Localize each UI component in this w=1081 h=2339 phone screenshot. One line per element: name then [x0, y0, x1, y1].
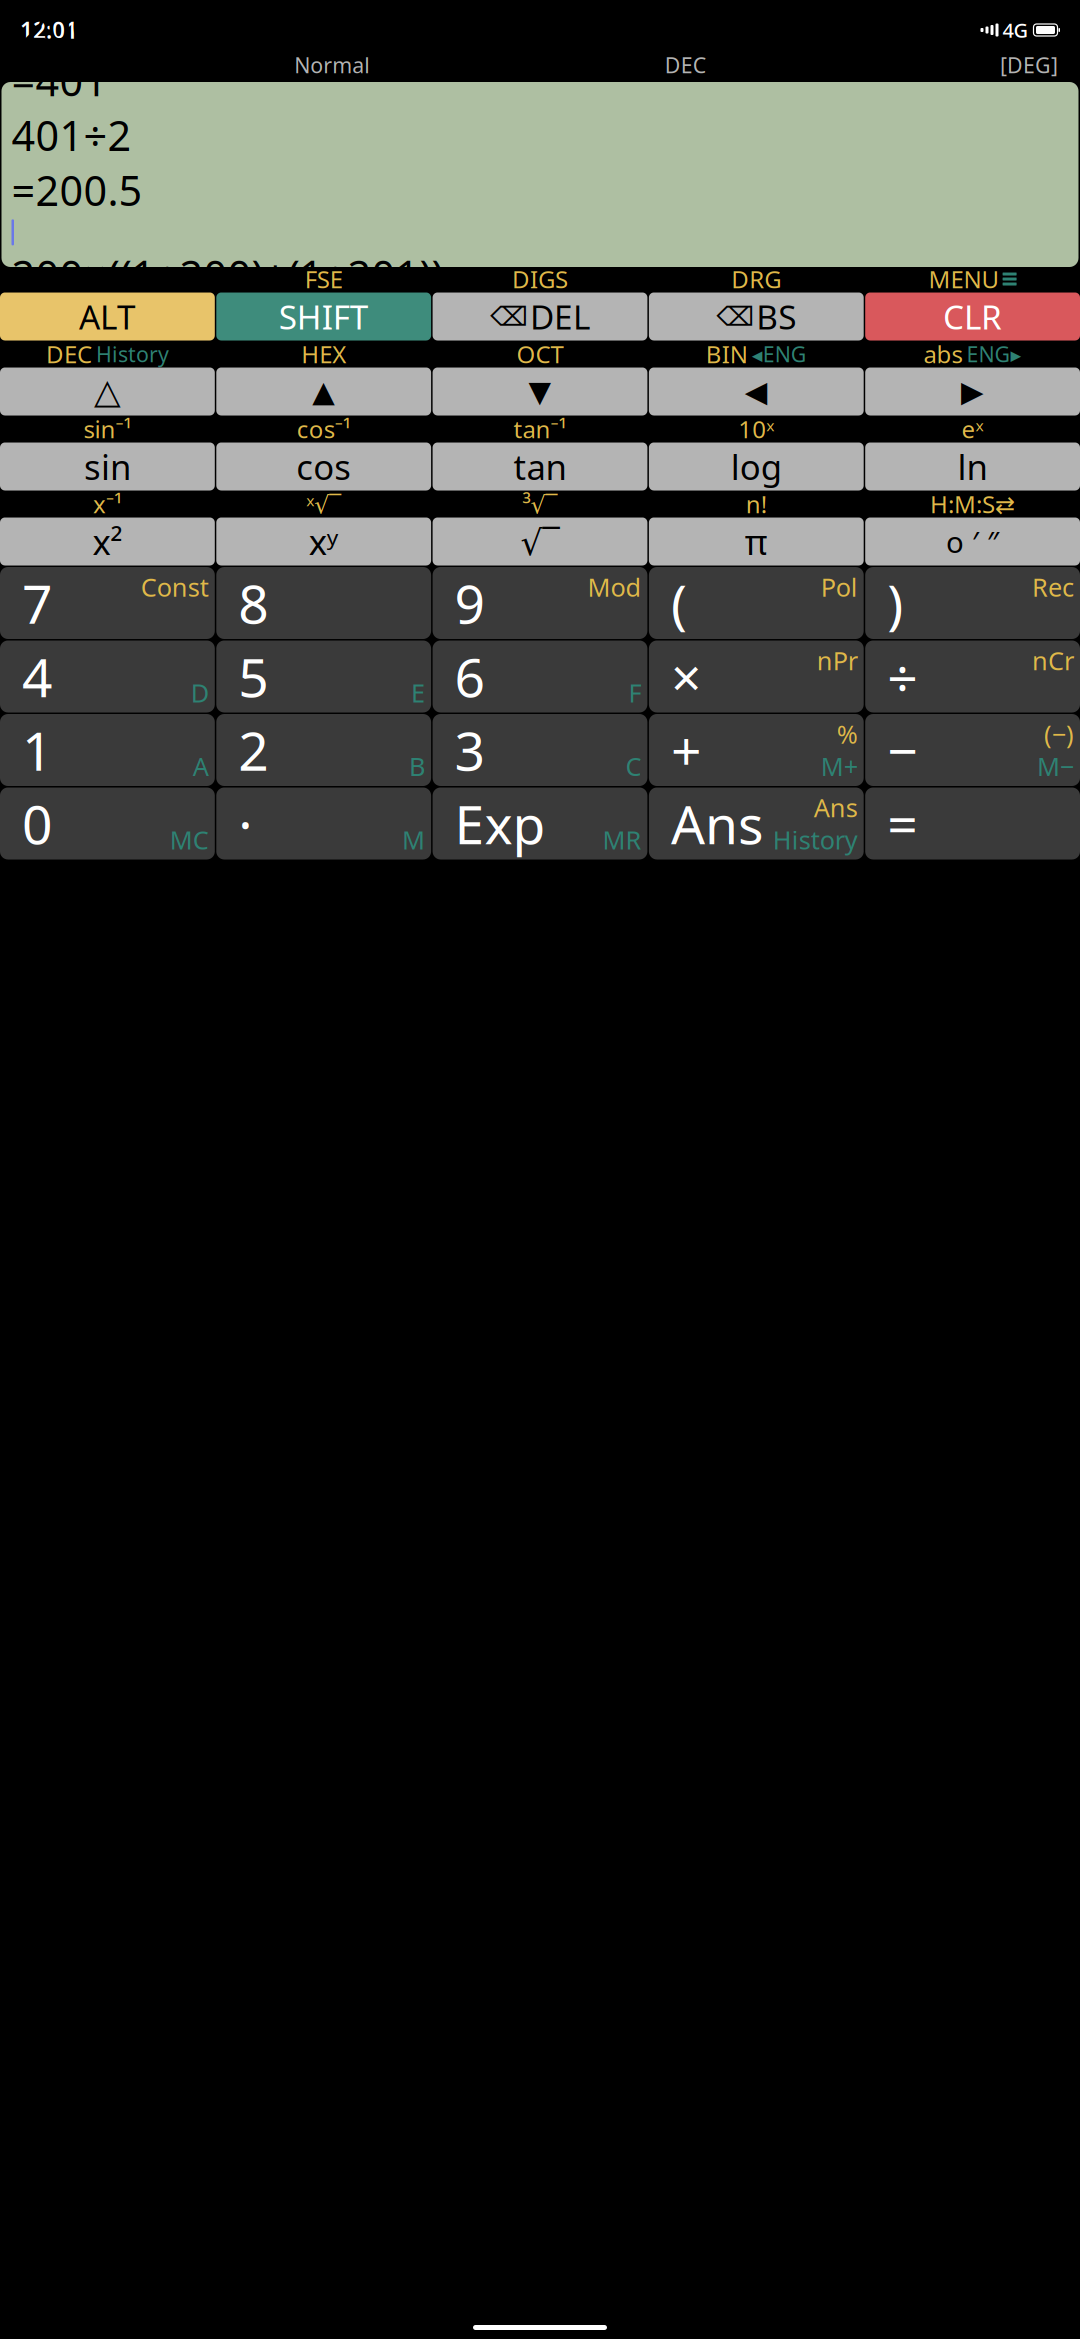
button[interactable]: % [649, 714, 864, 786]
button[interactable] [0, 787, 215, 859]
staticText: 2 [238, 715, 269, 785]
staticText: 4G [1002, 17, 1028, 43]
staticText: × [671, 641, 702, 712]
staticText: nPr [817, 643, 858, 677]
staticText: Normal [294, 51, 370, 79]
button[interactable]: tan [433, 442, 647, 490]
staticText: MENU [929, 263, 1000, 295]
staticText: SHIFT [279, 294, 369, 339]
staticText: n! [746, 488, 767, 520]
staticText: F [628, 676, 641, 709]
staticText: (200+201)÷1 [11, 0, 251, 53]
button[interactable] [0, 640, 215, 712]
staticText: (−) [1044, 717, 1074, 751]
staticText: sin⁻¹ [83, 413, 131, 445]
staticText: =401 [11, 53, 107, 108]
button[interactable]: ⌫ [649, 292, 864, 340]
staticText: =200.5 [11, 162, 142, 217]
staticText: ALT [79, 294, 136, 339]
button[interactable]: (−) [865, 714, 1080, 786]
staticText: MC [170, 823, 209, 856]
staticText: Ans [814, 790, 858, 824]
staticText: 6 [455, 641, 486, 712]
button[interactable]: xʸ [216, 517, 431, 565]
staticText: CLR [943, 294, 1002, 339]
staticText: ( [671, 568, 687, 638]
button[interactable]: Pol [649, 567, 864, 639]
button[interactable]: x² [0, 517, 215, 565]
staticText: BS [756, 294, 796, 339]
button[interactable]: ln [865, 442, 1080, 490]
staticText: 9 [455, 568, 486, 638]
button[interactable]: √‾ [433, 517, 647, 565]
staticText: x⁻¹ [93, 488, 122, 520]
staticText: A [193, 749, 209, 783]
staticText: 10ˣ [738, 413, 774, 445]
staticText: 12:01 [20, 15, 78, 45]
staticText: B [409, 749, 425, 783]
button[interactable]: Ans [649, 787, 864, 859]
staticText: △ [94, 372, 121, 411]
button[interactable] [433, 640, 647, 712]
button[interactable] [433, 714, 647, 786]
button[interactable]: ▶ [865, 367, 1080, 415]
staticText: Rec [1032, 570, 1074, 604]
staticText: DIGS [512, 263, 568, 295]
button[interactable] [216, 640, 431, 712]
button[interactable]: Mod [433, 567, 647, 639]
staticText: √‾ [520, 518, 559, 564]
button[interactable] [216, 787, 431, 859]
button[interactable]: nPr [649, 640, 864, 712]
button[interactable]: nCr [865, 640, 1080, 712]
button[interactable] [216, 567, 431, 639]
staticText: tan⁻¹ [513, 413, 566, 445]
button[interactable] [216, 714, 431, 786]
button[interactable]: CLR [865, 292, 1080, 340]
staticText: nCr [1032, 643, 1074, 677]
staticText: History [96, 340, 169, 368]
button[interactable]: sin [0, 442, 215, 490]
staticText: M [402, 823, 425, 856]
staticText: HEX [301, 338, 346, 370]
staticText: 401÷2 [11, 108, 131, 162]
staticText: [DEG] [1000, 51, 1058, 79]
button[interactable]: ◀ [649, 367, 864, 415]
staticText: 7 [22, 568, 53, 638]
button[interactable] [865, 787, 1080, 859]
button[interactable]: π [649, 517, 864, 565]
staticText: D [191, 676, 209, 709]
button[interactable] [433, 787, 647, 859]
staticText: DEC [46, 338, 92, 370]
button[interactable]: Rec [865, 567, 1080, 639]
button[interactable]: ALT [0, 292, 215, 340]
staticText: ENG▸ [967, 340, 1022, 368]
staticText: 3 [455, 715, 486, 785]
staticText: M− [1037, 749, 1074, 783]
staticText: DEL [530, 294, 590, 339]
button[interactable] [0, 714, 215, 786]
button[interactable]: ▼ [433, 367, 647, 415]
staticText: % [837, 717, 858, 751]
button[interactable]: log [649, 442, 864, 490]
staticText: 5 [238, 641, 269, 712]
staticText: 200×((1÷200)+(1÷201)) [11, 247, 443, 302]
button[interactable]: o ′ ″ [865, 517, 1080, 565]
staticText: BIN [706, 338, 748, 370]
button[interactable]: △ [0, 367, 215, 415]
staticText: = [887, 788, 918, 859]
staticText: tan [513, 443, 566, 489]
button[interactable]: ⌫ [433, 292, 647, 340]
button[interactable]: SHIFT [216, 292, 431, 340]
staticText: 8 [238, 568, 269, 638]
staticText: o ′ ″ [946, 522, 999, 561]
staticText: − [887, 715, 918, 785]
button[interactable]: cos [216, 442, 431, 490]
staticText: ÷ [887, 641, 918, 712]
staticText: · [238, 788, 252, 859]
button[interactable]: ▲ [216, 367, 431, 415]
button[interactable]: Const [0, 567, 215, 639]
staticText: cos⁻¹ [297, 413, 351, 445]
staticText: ) [887, 568, 903, 638]
staticText: =1.995024875622 [11, 302, 358, 357]
staticText: eˣ [962, 413, 984, 445]
